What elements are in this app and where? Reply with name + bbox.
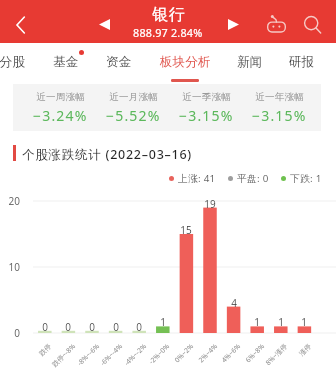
staticText: 0 xyxy=(127,320,151,334)
staticText: 15 xyxy=(174,223,198,237)
staticText: 板块分析 xyxy=(160,54,211,70)
staticText: 银行 xyxy=(152,5,185,25)
staticText: 下跌: 1 xyxy=(290,172,322,185)
staticText: −3.24% xyxy=(33,106,88,125)
staticText: 888.97 2.84% xyxy=(133,25,203,40)
staticText: 10 xyxy=(0,260,20,274)
button[interactable]: Previous sector xyxy=(91,11,118,38)
staticText: 涨停 xyxy=(297,342,313,358)
staticText: 0 xyxy=(104,320,128,334)
button[interactable]: Next sector xyxy=(220,11,247,38)
button[interactable]: 新闻 xyxy=(220,43,280,84)
staticText: −5.52% xyxy=(106,106,161,125)
staticText: 1 xyxy=(269,315,293,329)
staticText: 资金 xyxy=(106,54,132,70)
button[interactable]: 研报 xyxy=(272,43,332,84)
staticText: 上涨: 41 xyxy=(178,172,216,185)
button[interactable]: AI assistant xyxy=(262,8,290,36)
staticText: 0 xyxy=(0,326,20,340)
staticText: 新闻 xyxy=(237,54,263,70)
staticText: −3.15% xyxy=(179,106,234,125)
staticText: 0%~2% xyxy=(172,342,195,364)
staticText: -2%~0% xyxy=(146,342,171,366)
staticText: −3.15% xyxy=(252,106,307,125)
staticText: 平盘: 0 xyxy=(237,172,269,185)
button[interactable]: Back xyxy=(4,9,36,41)
staticText: 个股涨跌统计 (2022–03–16) xyxy=(22,146,193,163)
button[interactable]: 平盘: 0 xyxy=(228,172,269,185)
staticText: 0 xyxy=(80,320,104,334)
button[interactable]: Search xyxy=(298,9,326,37)
button[interactable]: 板块分析 xyxy=(155,43,215,84)
staticText: 跌停 xyxy=(37,342,53,358)
staticText: 研报 xyxy=(289,54,315,70)
staticText: -4%~-2% xyxy=(122,342,148,368)
staticText: 近一年涨幅 xyxy=(255,91,304,103)
button[interactable]: 资金 xyxy=(89,43,149,84)
staticText: 近一周涨幅 xyxy=(36,91,85,103)
staticText: 1 xyxy=(245,315,269,329)
staticText: -6%~-4% xyxy=(98,342,124,368)
staticText: 基金 xyxy=(53,54,79,70)
staticText: 8%~涨停 xyxy=(263,342,289,368)
staticText: 0 xyxy=(33,320,57,334)
staticText: 6%~8% xyxy=(243,342,266,364)
button[interactable]: 基金 xyxy=(36,43,96,84)
staticText: 4%~6% xyxy=(219,342,242,364)
staticText: 1 xyxy=(292,315,316,329)
staticText: 近一月涨幅 xyxy=(109,91,158,103)
staticText: 1 xyxy=(151,315,175,329)
button[interactable]: 上涨: 41 xyxy=(169,172,216,185)
staticText: 19 xyxy=(198,197,222,211)
staticText: 4 xyxy=(222,296,246,310)
button[interactable]: 下跌: 1 xyxy=(281,172,322,185)
staticText: -8%~-6% xyxy=(75,342,101,368)
staticText: 成分股 xyxy=(0,54,25,70)
button[interactable]: 成分股 xyxy=(0,43,36,84)
staticText: 跌停~-8% xyxy=(49,342,77,369)
staticText: 0 xyxy=(56,320,80,334)
staticText: 20 xyxy=(0,194,20,208)
staticText: 2%~4% xyxy=(196,342,219,364)
staticText: 近一季涨幅 xyxy=(182,91,231,103)
